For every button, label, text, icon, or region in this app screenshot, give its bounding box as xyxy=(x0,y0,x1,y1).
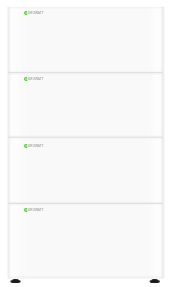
staticText: GROWATT xyxy=(28,77,44,81)
staticText: GROWATT xyxy=(28,208,44,212)
staticText: GROWATT xyxy=(28,11,44,15)
button[interactable]: Battery module 3 xyxy=(8,138,163,203)
button[interactable]: Battery module 1 xyxy=(8,7,163,72)
button[interactable]: Battery module 4 xyxy=(8,204,163,278)
staticText: GROWATT xyxy=(28,144,44,148)
button[interactable]: Battery module 2 xyxy=(8,73,163,136)
